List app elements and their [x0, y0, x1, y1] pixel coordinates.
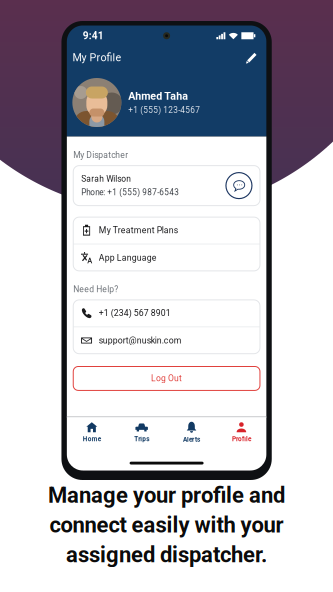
staticText: App Language [99, 253, 157, 263]
staticText: Sarah Wilson [81, 174, 131, 184]
staticText: My Profile [72, 51, 121, 64]
button[interactable]: support@nuskin.com [73, 327, 260, 354]
staticText: Home [83, 435, 101, 443]
staticText: Alerts [183, 436, 200, 443]
staticText: +1 (555) 123-4567 [128, 105, 200, 115]
staticText: Log Out [151, 373, 182, 383]
staticText: Profile [232, 435, 251, 443]
staticText: Manage your profile and [48, 482, 285, 508]
staticText: 9:41 [83, 30, 104, 42]
staticText: assigned dispatcher. [66, 542, 267, 568]
staticText: My Treatment Plans [99, 225, 178, 235]
button[interactable]: My Treatment Plans [73, 217, 260, 243]
button[interactable]: App Language [73, 244, 260, 271]
staticText: Phone: +1 (555) 987-6543 [81, 188, 179, 197]
button[interactable]: Log Out [67, 366, 266, 390]
staticText: Trips [134, 435, 149, 443]
button[interactable]: Edit profile [242, 47, 261, 68]
staticText: +1 (234) 567 8901 [99, 308, 171, 318]
button[interactable]: Home [67, 417, 117, 447]
button[interactable]: +1 (234) 567 8901 [73, 300, 260, 326]
button[interactable]: Profile [216, 417, 266, 447]
staticText: My Dispatcher [73, 150, 128, 160]
button[interactable]: Message dispatcher [226, 173, 252, 199]
staticText: Need Help? [73, 284, 118, 294]
button[interactable]: Alerts [167, 417, 216, 447]
staticText: support@nuskin.com [99, 335, 182, 346]
staticText: Ahmed Taha [128, 90, 188, 102]
button[interactable]: Trips [117, 417, 167, 447]
staticText: connect easily with your [49, 512, 283, 538]
